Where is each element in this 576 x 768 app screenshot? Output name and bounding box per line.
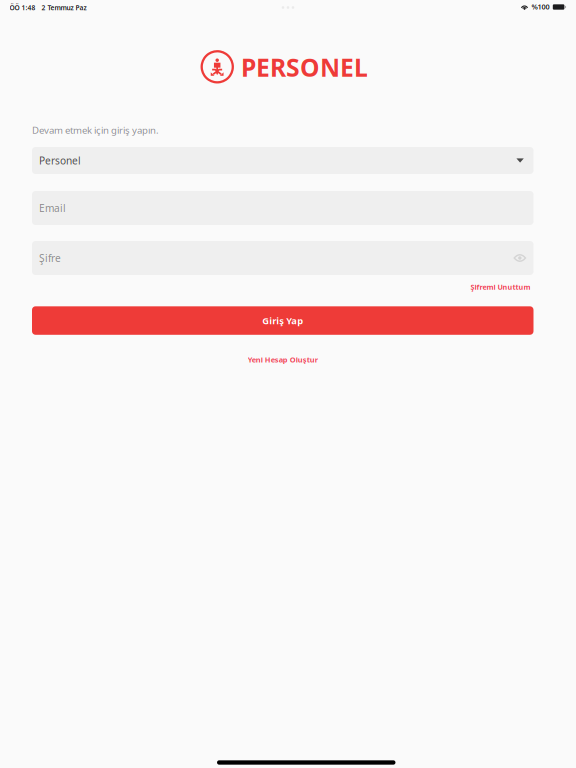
button[interactable]: Personel <box>32 147 533 174</box>
staticText: %100 <box>531 2 549 12</box>
staticText: PERSONEL <box>241 50 368 84</box>
staticText: Şifre <box>39 251 61 265</box>
button[interactable]: Şifre <box>32 241 533 275</box>
staticText: Email <box>39 201 66 215</box>
staticText: Şifremi Unuttum <box>470 282 530 292</box>
button[interactable]: Yeni Hesap Oluştur <box>32 354 533 365</box>
staticText: Giriş Yap <box>262 314 303 327</box>
button[interactable]: Giriş Yap <box>32 306 533 335</box>
button[interactable]: Email <box>32 191 533 225</box>
button[interactable]: Şifremi Unuttum <box>32 282 530 292</box>
staticText: ÖÖ 1:48 2 Temmuz Paz <box>9 3 86 12</box>
staticText: Devam etmek için giriş yapın. <box>32 123 159 137</box>
staticText: Yeni Hesap Oluştur <box>248 354 318 365</box>
staticText: Personel <box>39 154 81 167</box>
